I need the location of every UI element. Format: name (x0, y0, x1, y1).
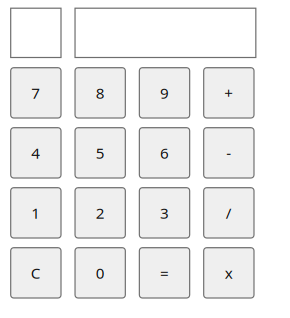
staticText: 4 (31, 142, 40, 163)
staticText: x (225, 262, 233, 283)
staticText: 6 (160, 142, 169, 163)
staticText: 2 (96, 202, 105, 223)
staticText: 0 (96, 262, 105, 283)
button[interactable]: x (204, 248, 254, 298)
button[interactable]: 4 (11, 128, 61, 178)
button[interactable]: = (139, 248, 190, 298)
staticText: + (224, 82, 233, 103)
staticText: C (31, 262, 41, 283)
button[interactable]: + (204, 68, 254, 118)
staticText: 1 (31, 202, 40, 223)
button[interactable]: 8 (75, 68, 125, 118)
button[interactable]: 0 (75, 248, 125, 298)
button[interactable]: - (204, 128, 254, 178)
button[interactable]: 9 (139, 68, 190, 118)
button[interactable]: / (204, 188, 254, 238)
staticText: 3 (160, 202, 169, 223)
button[interactable]: 2 (75, 188, 125, 238)
button[interactable]: 3 (139, 188, 190, 238)
button[interactable]: 5 (75, 128, 125, 178)
button[interactable]: 7 (11, 68, 61, 118)
staticText: = (160, 262, 169, 283)
staticText: / (226, 202, 232, 223)
button[interactable]: 6 (139, 128, 190, 178)
staticText: 7 (31, 82, 40, 103)
staticText: 5 (96, 142, 105, 163)
button[interactable]: C (11, 248, 61, 298)
button[interactable]: 1 (11, 188, 61, 238)
staticText: 9 (160, 82, 169, 103)
staticText: 8 (96, 82, 105, 103)
staticText: - (226, 142, 231, 163)
